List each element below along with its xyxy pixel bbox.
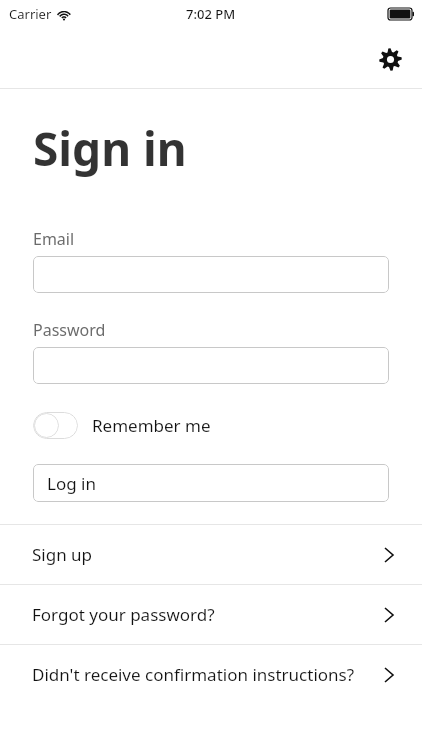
staticText: Password: [33, 319, 106, 341]
button[interactable]: Forgot your password?: [0, 585, 422, 644]
button[interactable]: Didn't receive confirmation instructions…: [0, 645, 422, 704]
button[interactable]: Text field: [33, 256, 389, 293]
button[interactable]: Sign up: [0, 525, 422, 584]
staticText: Forgot your password?: [32, 603, 215, 626]
staticText: Sign in: [33, 117, 187, 180]
button[interactable]: Settings: [373, 42, 407, 76]
button[interactable]: Text field: [33, 347, 389, 384]
button[interactable]: Log in: [33, 464, 389, 502]
staticText: Remember me: [92, 414, 211, 437]
staticText: 7:02 PM: [186, 5, 236, 23]
staticText: Sign up: [32, 543, 93, 566]
staticText: Log in: [47, 472, 96, 495]
button[interactable]: Remember me: [33, 409, 211, 441]
staticText: Carrier: [9, 5, 52, 23]
staticText: Didn't receive confirmation instructions…: [32, 663, 355, 686]
staticText: Email: [33, 228, 75, 250]
